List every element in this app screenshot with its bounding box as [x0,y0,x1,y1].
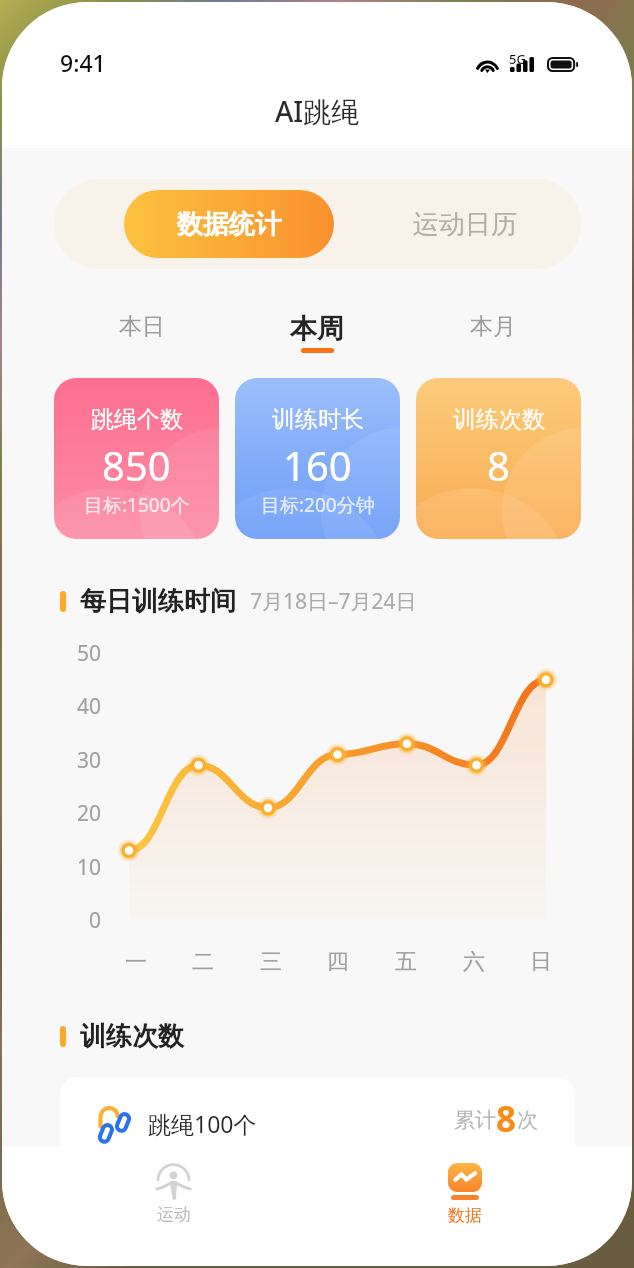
button[interactable]: 训练时长 [235,378,400,539]
button[interactable]: 数据 [319,1146,610,1266]
staticText: 8 [487,438,510,492]
staticText: 五 [386,948,426,976]
staticText: 0 [16,906,101,935]
staticText: 累计 [454,1107,496,1133]
staticText: 30 [16,746,101,775]
staticText: 运动日历 [413,208,517,241]
staticText: 每日训练时间 [80,585,236,618]
staticText: 跳绳个数 [91,405,183,434]
staticText: 50 [16,639,101,668]
staticText: 训练时长 [272,405,364,434]
staticText: 跳绳100个 [148,1108,257,1139]
staticText: 本日 [119,312,165,341]
staticText: 六 [454,948,494,976]
button[interactable]: 本日 [54,312,229,353]
staticText: 一 [116,948,156,976]
staticText: 目标:200分钟 [261,492,375,518]
staticText: 目标:1500个 [84,492,190,518]
staticText: 训练次数 [80,1020,184,1053]
staticText: 20 [16,799,101,828]
button[interactable]: 数据统计 [124,190,334,258]
staticText: 次 [517,1107,538,1133]
staticText: 10 [16,853,101,882]
staticText: 9:41 [60,47,106,78]
staticText: 训练次数 [453,405,545,434]
staticText: 日 [521,948,561,976]
staticText: 四 [318,948,358,976]
staticText: 本月 [470,312,516,341]
staticText: 850 [102,438,171,492]
staticText: 数据统计 [177,208,281,241]
staticText: 7月18日–7月24日 [250,587,417,616]
staticText: 二 [183,948,223,976]
staticText: 40 [16,692,101,721]
staticText: 三 [251,948,291,976]
staticText: 运动 [157,1204,191,1225]
staticText: 数据 [448,1205,482,1226]
button[interactable]: 跳绳100个 [60,1077,575,1171]
button[interactable]: 本周 [229,312,405,353]
staticText: 5G [509,50,526,68]
staticText: AI跳绳 [275,92,360,130]
button[interactable]: 跳绳个数 [54,378,219,539]
staticText: 本周 [290,312,344,346]
button[interactable]: 运动 [28,1146,319,1266]
staticText: 160 [283,438,352,492]
button[interactable]: 训练次数 [416,378,581,539]
button[interactable]: 运动日历 [365,179,565,269]
staticText: 8 [496,1095,517,1143]
button[interactable]: 本月 [405,312,581,353]
